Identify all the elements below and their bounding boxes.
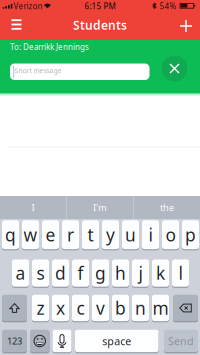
staticText: c	[76, 296, 84, 319]
button[interactable]: 123	[2, 330, 27, 353]
staticText: 54%	[159, 1, 176, 11]
staticText: space	[102, 334, 131, 348]
button[interactable]: Dictate	[52, 330, 71, 353]
button[interactable]: f	[72, 260, 89, 287]
button[interactable]: Delete	[173, 295, 198, 322]
button[interactable]: Emoji	[30, 330, 49, 353]
staticText: g	[95, 262, 106, 285]
button[interactable]: x	[52, 295, 69, 322]
staticText: m	[152, 296, 168, 319]
staticText: Students	[73, 17, 127, 33]
button[interactable]: n	[132, 295, 149, 322]
button[interactable]: h	[112, 260, 129, 287]
staticText: e	[45, 223, 55, 246]
staticText: i	[148, 223, 152, 246]
button[interactable]: I'm	[67, 196, 133, 219]
staticText: d	[55, 262, 66, 285]
staticText: n	[135, 296, 146, 319]
staticText: w	[23, 223, 37, 246]
button[interactable]: g	[92, 260, 109, 287]
button[interactable]: space	[75, 330, 158, 353]
button[interactable]: Shift	[2, 295, 27, 322]
staticText: To: Dearrikk Jennings	[10, 42, 89, 52]
button[interactable]: q	[2, 221, 19, 250]
staticText: I	[32, 201, 35, 214]
button[interactable]: r	[62, 221, 79, 250]
button[interactable]: Short message	[10, 63, 149, 80]
staticText: x	[56, 296, 65, 319]
button[interactable]: j	[132, 260, 149, 287]
button[interactable]: s	[32, 260, 49, 287]
button[interactable]: z	[32, 295, 49, 322]
staticText: 6:15 PM	[84, 1, 115, 11]
staticText: l	[178, 262, 182, 285]
staticText: f	[77, 262, 83, 285]
staticText: b	[115, 296, 126, 319]
button[interactable]: u	[122, 221, 139, 250]
staticText: u	[125, 223, 136, 246]
button[interactable]: v	[92, 295, 109, 322]
staticText: j	[138, 262, 142, 285]
button[interactable]: c	[72, 295, 89, 322]
staticText: o	[165, 223, 175, 246]
staticText: a	[15, 262, 25, 285]
button[interactable]: p	[182, 221, 199, 250]
button[interactable]: w	[22, 221, 39, 250]
button[interactable]: i	[142, 221, 159, 250]
staticText: Send	[168, 334, 194, 348]
staticText: h	[115, 262, 126, 285]
button[interactable]: b	[112, 295, 129, 322]
staticText: Short message	[14, 66, 61, 75]
button[interactable]: I	[0, 196, 66, 219]
staticText: the	[160, 201, 174, 214]
button[interactable]: k	[152, 260, 169, 287]
button[interactable]: the	[134, 196, 200, 219]
staticText: I'm	[93, 201, 107, 214]
staticText: k	[156, 262, 165, 285]
staticText: z	[36, 296, 44, 319]
staticText: 123	[7, 335, 22, 347]
button[interactable]: Menu	[8, 15, 26, 33]
staticText: s	[36, 262, 44, 285]
button[interactable]: l	[172, 260, 189, 287]
button[interactable]: Add	[176, 16, 196, 36]
button[interactable]: d	[52, 260, 69, 287]
button[interactable]: m	[152, 295, 169, 322]
button[interactable]: a	[12, 260, 29, 287]
staticText: v	[96, 296, 105, 319]
button[interactable]: o	[162, 221, 179, 250]
button[interactable]: t	[82, 221, 99, 250]
button[interactable]: y	[102, 221, 119, 250]
staticText: q	[5, 223, 16, 246]
staticText: p	[185, 223, 196, 246]
button[interactable]: e	[42, 221, 59, 250]
button[interactable]: Send	[164, 330, 198, 353]
staticText: r	[67, 223, 74, 246]
staticText: y	[106, 223, 115, 246]
button[interactable]: Close	[161, 55, 187, 81]
staticText: t	[87, 223, 93, 246]
staticText: Verizon	[13, 1, 42, 11]
